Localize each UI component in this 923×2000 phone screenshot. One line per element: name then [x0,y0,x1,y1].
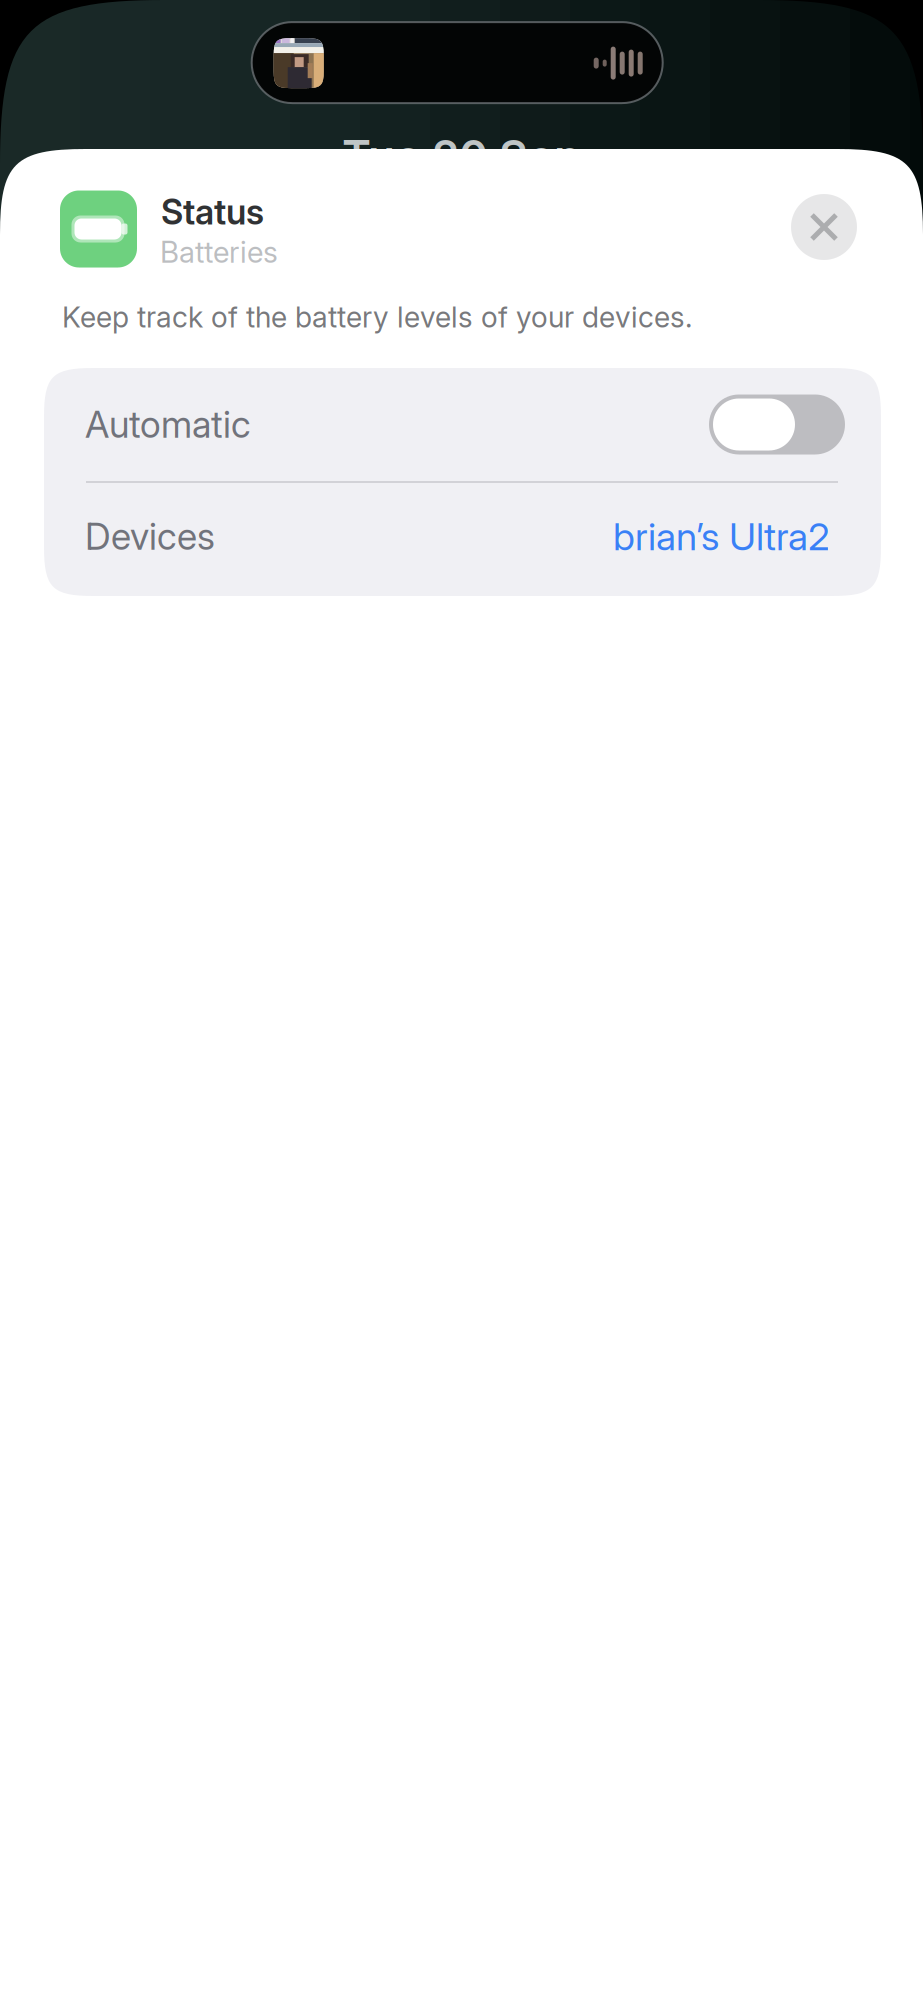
staticText: Tue 20 Sep [342,129,581,183]
staticText: Keep track of the battery levels of your… [62,300,692,334]
button[interactable]: Close [791,194,857,260]
staticText: Status [161,191,264,233]
staticText: Batteries [160,234,278,270]
button[interactable]: Devices [44,483,881,596]
button[interactable]: Automatic [709,394,845,454]
staticText: Devices [85,514,215,559]
staticText: brian’s Ultra2 [613,513,830,559]
staticText: Automatic [85,402,251,447]
